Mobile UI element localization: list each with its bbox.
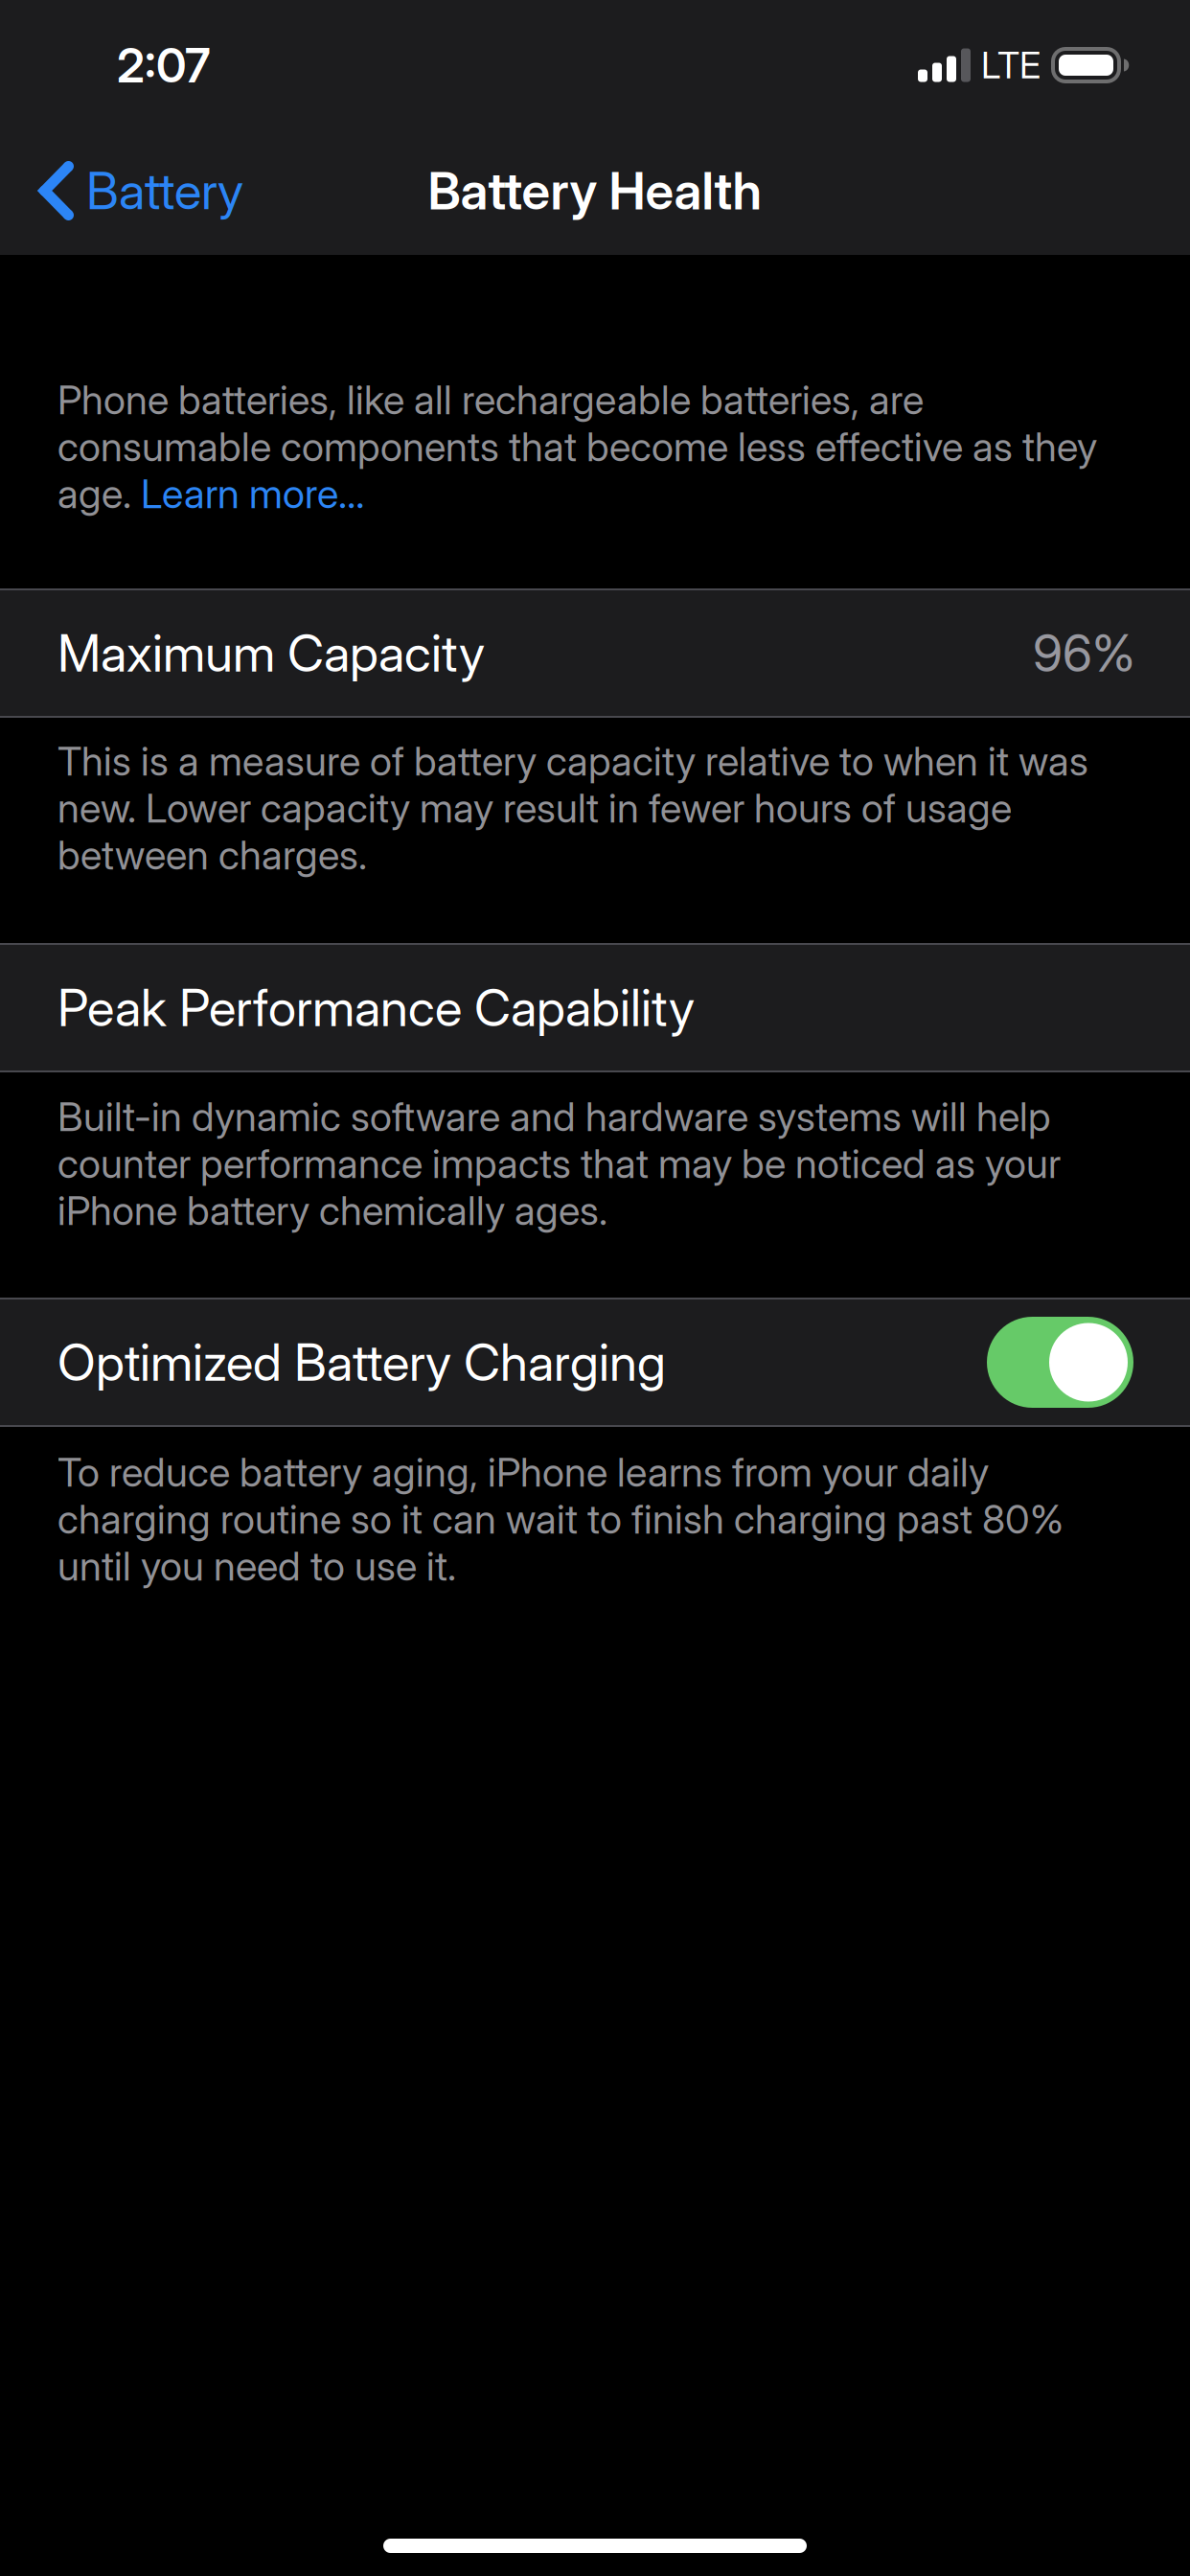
staticText: 2:07 <box>117 37 211 94</box>
staticText: Learn more… <box>131 470 364 518</box>
staticText: Peak Performance Capability <box>57 977 695 1038</box>
staticText: until you need to use it. <box>57 1542 456 1590</box>
staticText: age. <box>57 470 131 518</box>
staticText: Built-in dynamic software and hardware s… <box>57 1092 1051 1141</box>
staticText: new. Lower capacity may result in fewer … <box>57 784 1012 832</box>
staticText: Optimized Battery Charging <box>57 1332 666 1393</box>
button[interactable]: Back to Battery <box>0 126 272 255</box>
button[interactable]: Learn more… <box>131 470 364 518</box>
staticText: Battery Health <box>428 160 762 222</box>
staticText: LTE <box>981 43 1041 87</box>
staticText: Phone batteries, like all rechargeable b… <box>57 376 924 424</box>
button[interactable]: Peak Performance Capability <box>0 945 1190 1070</box>
staticText: 96% <box>1033 623 1135 684</box>
staticText: charging routine so it can wait to finis… <box>57 1495 1064 1543</box>
staticText: To reduce battery aging, iPhone learns f… <box>57 1448 989 1496</box>
staticText: consumable components that become less e… <box>57 423 1097 471</box>
staticText: between charges. <box>57 831 367 879</box>
staticText: Battery <box>86 160 243 221</box>
staticText: iPhone battery chemically ages. <box>57 1186 607 1235</box>
staticText: Maximum Capacity <box>57 623 485 684</box>
button[interactable]: Optimized Battery Charging <box>0 1299 1190 1425</box>
staticText: This is a measure of battery capacity re… <box>57 737 1088 785</box>
staticText: counter performance impacts that may be … <box>57 1139 1061 1188</box>
button[interactable]: Maximum Capacity <box>0 590 1190 716</box>
